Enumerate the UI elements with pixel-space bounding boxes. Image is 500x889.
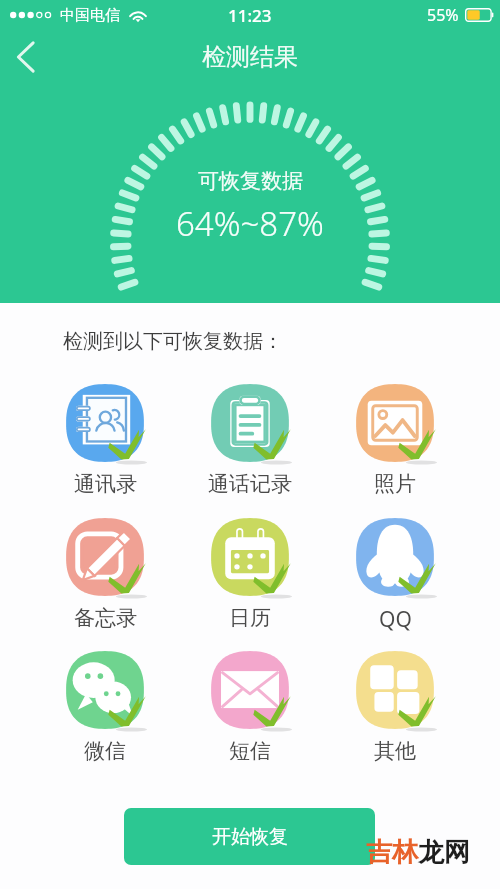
staticText: 其他 [374, 738, 416, 764]
staticText: 龙网 [418, 836, 470, 869]
staticText: 11:23 [228, 4, 272, 27]
staticText: QQ [379, 605, 412, 634]
staticText: 日历 [229, 605, 271, 631]
button[interactable]: 开始恢复 [124, 808, 375, 865]
button[interactable]: Back [4, 36, 46, 78]
button[interactable]: 日历 [194, 515, 306, 630]
staticText: 中国电信 [60, 6, 120, 25]
staticText: 照片 [374, 471, 416, 497]
staticText: 短信 [229, 738, 271, 764]
staticText: 通讯录 [74, 471, 137, 497]
staticText: 55% [427, 4, 459, 26]
staticText: 检测结果 [202, 42, 298, 72]
staticText: 开始恢复 [212, 825, 288, 849]
staticText: 备忘录 [74, 605, 137, 631]
button[interactable]: 通话记录 [194, 381, 306, 496]
staticText: 64%~87% [176, 201, 324, 246]
staticText: 检测到以下可恢复数据： [63, 329, 283, 354]
button[interactable]: 微信 [49, 648, 161, 763]
button[interactable]: 其他 [339, 648, 451, 763]
staticText: 微信 [84, 738, 126, 764]
button[interactable]: 通讯录 [49, 381, 161, 496]
button[interactable]: QQ [339, 515, 451, 630]
button[interactable]: 短信 [194, 648, 306, 763]
staticText: 通话记录 [208, 471, 292, 497]
button[interactable]: 备忘录 [49, 515, 161, 630]
staticText: 吉林 [366, 836, 418, 869]
staticText: 可恢复数据 [198, 168, 303, 194]
button[interactable]: 照片 [339, 381, 451, 496]
